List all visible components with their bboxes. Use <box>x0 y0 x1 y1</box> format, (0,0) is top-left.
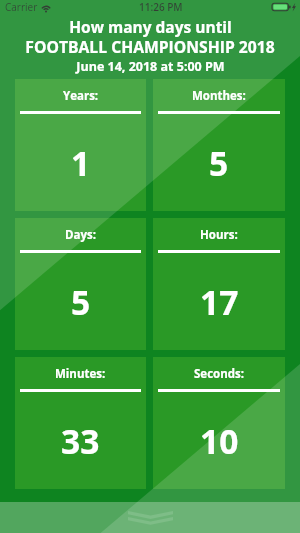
button[interactable]: Days: <box>15 218 146 350</box>
staticText: 17 <box>200 279 239 325</box>
button[interactable]: Years: <box>15 79 146 211</box>
staticText: Years: <box>63 88 99 104</box>
staticText: June 14, 2018 at 5:00 PM <box>76 58 225 75</box>
staticText: 5 <box>209 140 229 186</box>
button[interactable]: Monthes: <box>153 79 285 211</box>
button[interactable]: Seconds: <box>153 357 285 489</box>
staticText: 5 <box>71 279 91 325</box>
staticText: 1 <box>71 140 91 186</box>
staticText: How many days until <box>69 16 232 37</box>
staticText: 33 <box>61 418 100 464</box>
staticText: Carrier <box>5 0 38 14</box>
staticText: Monthes: <box>192 88 246 104</box>
staticText: FOOTBALL CHAMPIONSHIP 2018 <box>25 36 275 57</box>
staticText: Hours: <box>200 227 238 243</box>
staticText: 11:26 PM <box>139 0 183 14</box>
staticText: Days: <box>65 227 96 243</box>
button[interactable]: Minutes: <box>15 357 146 489</box>
button[interactable]: Expand <box>0 502 300 533</box>
staticText: Minutes: <box>55 366 106 382</box>
staticText: 10 <box>200 418 239 464</box>
staticText: Seconds: <box>194 366 244 382</box>
button[interactable]: Hours: <box>153 218 285 350</box>
